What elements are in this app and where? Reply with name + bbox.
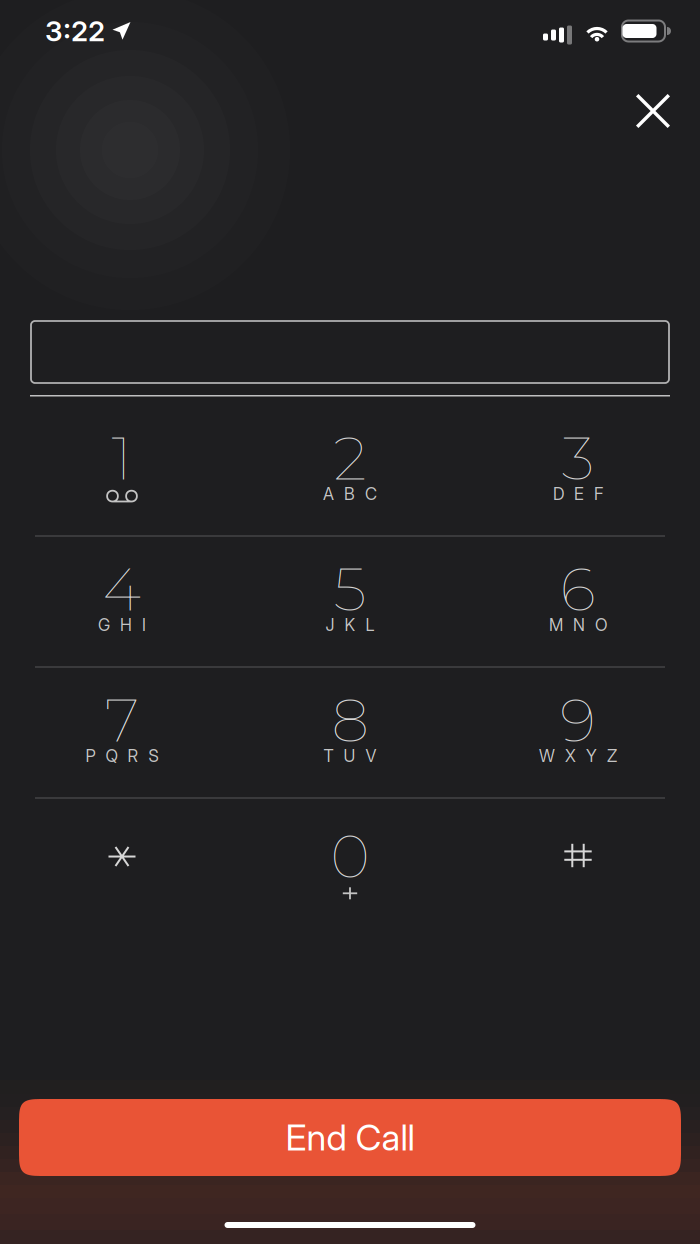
staticText: WXYZ: [539, 746, 617, 766]
staticText: 5: [333, 552, 366, 625]
button[interactable]: Hide keypad: [618, 76, 688, 146]
button[interactable]: [464, 798, 692, 928]
button[interactable]: 6: [464, 536, 692, 666]
staticText: MNO: [549, 615, 607, 635]
button[interactable]: 5: [236, 536, 464, 666]
staticText: PQRS: [85, 746, 158, 766]
staticText: 8: [331, 683, 368, 756]
staticText: 9: [560, 683, 596, 756]
staticText: 3: [561, 421, 594, 494]
button[interactable]: 4: [8, 536, 236, 666]
staticText: End Call: [285, 1116, 414, 1159]
button[interactable]: 1: [8, 405, 236, 535]
button[interactable]: 7: [8, 667, 236, 797]
staticText: 6: [560, 552, 596, 625]
staticText: 4: [102, 552, 141, 625]
staticText: GHI: [98, 615, 146, 635]
button[interactable]: 9: [464, 667, 692, 797]
button[interactable]: 3: [464, 405, 692, 535]
staticText: TUV: [323, 746, 376, 766]
staticText: 1: [111, 421, 132, 494]
button[interactable]: 2: [236, 405, 464, 535]
button[interactable]: 0: [236, 798, 464, 928]
staticText: DEF: [553, 484, 603, 504]
staticText: 0: [330, 819, 369, 892]
staticText: JKL: [325, 615, 374, 635]
staticText: ABC: [323, 484, 377, 504]
staticText: 2: [333, 421, 366, 494]
button[interactable]: End Call: [19, 1099, 681, 1176]
staticText: 7: [105, 683, 139, 756]
button[interactable]: 8: [236, 667, 464, 797]
staticText: 3:22: [45, 14, 105, 48]
button[interactable]: [8, 798, 236, 928]
